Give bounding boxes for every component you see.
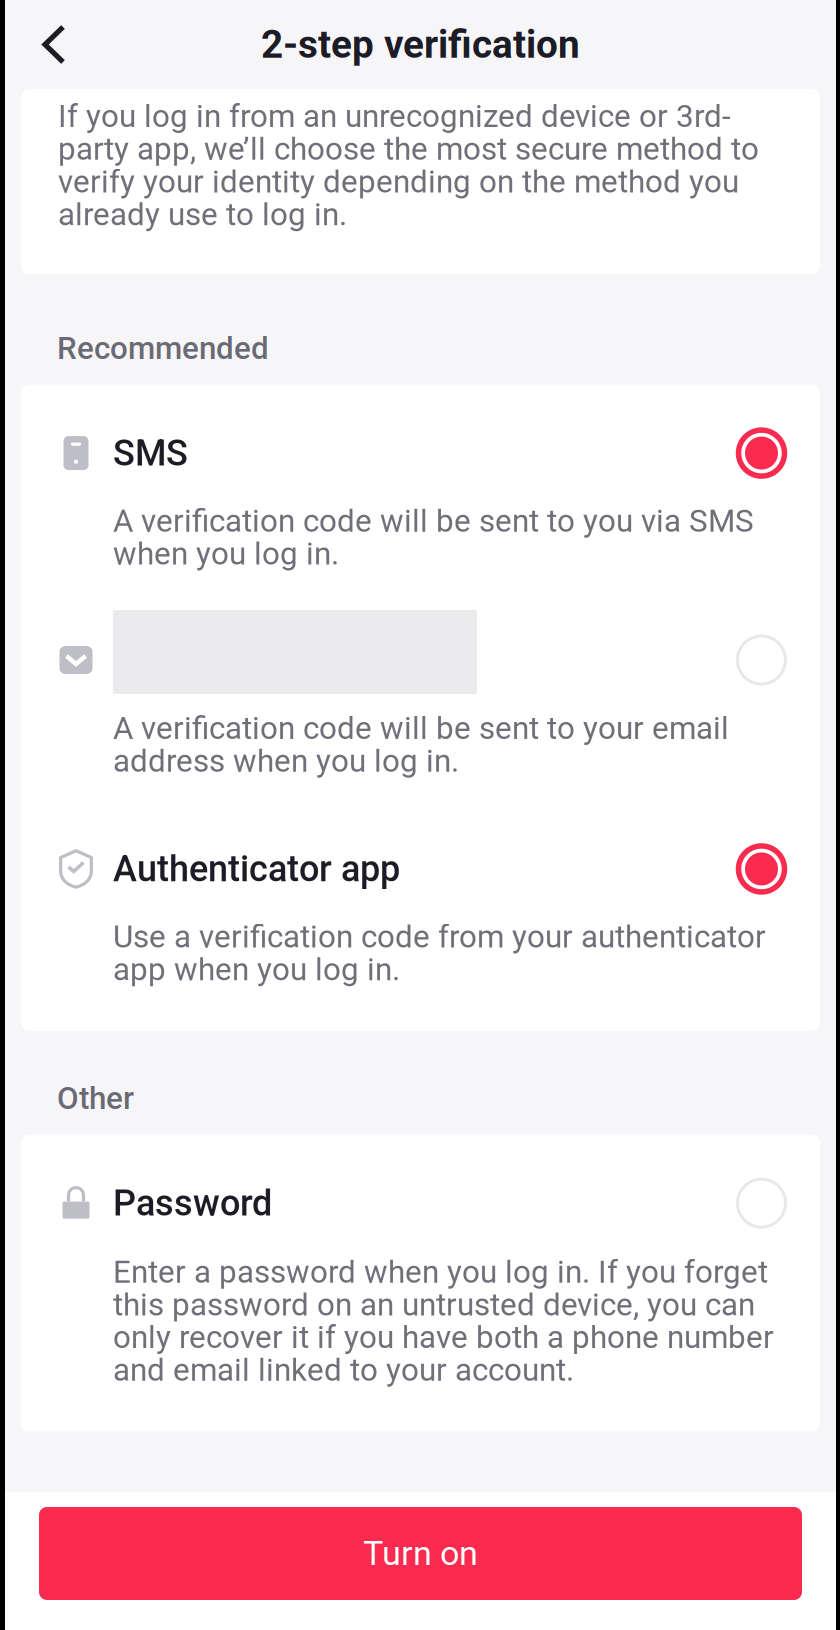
staticText: Authenticator app (113, 848, 400, 890)
staticText: SMS (113, 432, 188, 474)
staticText: If you log in from an unrecognized devic… (58, 98, 759, 233)
button[interactable]: Password (21, 1135, 820, 1431)
button[interactable]: Authenticator app (21, 801, 820, 1031)
staticText: Turn on (363, 1534, 478, 1573)
button[interactable]: A verification code will be sent to your… (21, 610, 820, 801)
staticText: Enter a password when you log in. If you… (113, 1254, 774, 1388)
staticText: Other (57, 1080, 134, 1117)
staticText: 2-step verification (261, 22, 580, 67)
staticText: A verification code will be sent to you … (113, 503, 754, 572)
staticText: Use a verification code from your authen… (113, 918, 766, 988)
staticText: Recommended (57, 330, 269, 367)
button[interactable]: SMS (21, 385, 820, 610)
staticText: A verification code will be sent to your… (113, 710, 729, 779)
button[interactable]: Back (5, 0, 87, 89)
staticText: Password (113, 1182, 272, 1224)
button[interactable]: Turn on (39, 1507, 802, 1600)
